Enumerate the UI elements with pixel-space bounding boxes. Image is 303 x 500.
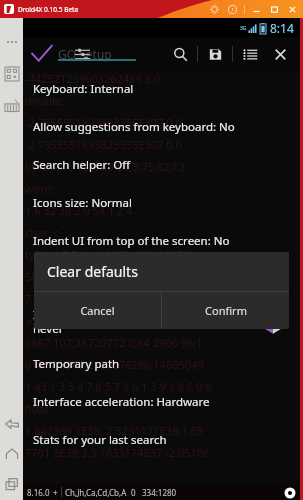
staticText: Cancel <box>80 303 115 318</box>
staticText: 0 <box>131 487 136 498</box>
button[interactable]: Menu <box>238 42 262 66</box>
button[interactable]: More <box>2 32 22 52</box>
button[interactable]: Interface acceleration: Hardware <box>23 383 300 421</box>
button[interactable]: Stats for your last search <box>23 421 300 459</box>
staticText: Temporary path <box>33 356 120 372</box>
button[interactable]: Indent UI from top of the screen: No <box>23 222 300 260</box>
staticText: GO Setup <box>58 46 112 62</box>
button[interactable]: Preview <box>283 486 296 499</box>
button[interactable]: Save <box>203 42 227 66</box>
staticText: Droid4X 0.10.5 Beta <box>18 5 79 14</box>
button[interactable]: Home <box>2 444 22 464</box>
staticText: Allow suggestions from keyboard: No <box>33 119 235 135</box>
button[interactable]: Fill toolbar: From right <box>23 260 300 298</box>
staticText: -2.7855551893823355E307 0.0 <box>25 137 182 152</box>
staticText: 9887 107;38720772 0;64 2906 96;1 <box>25 335 203 350</box>
staticText: -2.7855551893823355E307 0.0 <box>25 115 182 130</box>
button[interactable]: Recents <box>2 474 22 494</box>
button[interactable]: Help <box>227 4 238 15</box>
button[interactable]: Temporary path <box>23 345 300 383</box>
staticText: Ch,Jh,Ca,Cd,Cb,A <box>65 487 127 498</box>
button[interactable]: QR code <box>2 64 22 84</box>
staticText: 8:14 <box>270 20 294 36</box>
button[interactable]: Confirm <box>29 41 55 67</box>
staticText: 1 43 1 3 3 4 7 8 5 7 9 6 1 3 9 1 8 6 9 8 <box>25 379 212 394</box>
staticText: -442521239603262469 3 0 <box>25 71 161 86</box>
staticText: Fill toolbar: From right <box>33 271 154 287</box>
button[interactable]: Maximize <box>269 4 280 15</box>
button[interactable]: Icon: transparency = 0%, hide - never <box>23 298 300 345</box>
staticText: Keyboard: Internal <box>33 81 134 97</box>
staticText: xor: <box>25 313 45 328</box>
staticText: 334:1280 <box>142 487 177 498</box>
button[interactable]: Keyboard: Internal <box>23 70 300 108</box>
button[interactable]: Keyboard mapping <box>2 96 22 116</box>
staticText: 8.16.0 <box>27 487 50 498</box>
staticText: Icons size: Normal <box>33 195 133 211</box>
staticText: ty5 8 1 7 7 0 1 88363;1586902762;- <box>25 247 203 262</box>
button[interactable]: Minimize <box>251 4 262 15</box>
staticText: Indent UI from top of the screen: No <box>33 233 230 249</box>
staticText: 61417 7540;2139276286;14605049 <box>25 357 204 372</box>
button[interactable]: Close <box>287 4 298 15</box>
staticText: byte: -87;-106;-49;86;3;75;82;13 <box>25 159 186 174</box>
button[interactable]: Search helper: Off <box>23 146 300 184</box>
staticText: Icon: transparency = 0%, hide - never <box>33 307 199 336</box>
staticText: 5802 15;147701 88363;15869027 62;- <box>25 269 216 284</box>
staticText: char: c <box>25 225 59 240</box>
button[interactable]: Close <box>268 42 292 66</box>
staticText: 1 6 32 38 2 0 58 1 2 4 <box>25 203 133 218</box>
staticText: Confirm <box>205 303 247 318</box>
button[interactable]: Confirm <box>162 292 289 329</box>
staticText: Search helper: Off <box>33 157 131 173</box>
staticText: Stats for your last search <box>33 432 167 448</box>
staticText: double: <box>25 93 64 108</box>
button[interactable]: Icons size: Normal <box>23 184 300 222</box>
button[interactable]: Settings <box>209 4 220 15</box>
button[interactable]: Allow suggestions from keyboard: No <box>23 108 300 146</box>
button[interactable]: Back <box>2 414 22 434</box>
staticText: Interface acceleration: Hardware <box>33 394 210 410</box>
button[interactable]: Search <box>168 42 192 66</box>
staticText: Clear defaults <box>47 262 138 281</box>
staticText: 7 2 0 12 27337 <box>25 291 100 306</box>
button[interactable]: Cancel <box>34 292 161 329</box>
staticText: 3G <box>240 25 247 32</box>
staticText: + <box>53 487 58 498</box>
staticText: float: <box>25 401 52 416</box>
staticText: 7701 3E38;3.3 1633174E37;-2.05106 <box>25 445 210 460</box>
staticText: word: <box>25 181 55 196</box>
staticText: 1.842989 1E38;-2.5291171E38;1.59 <box>25 423 204 438</box>
